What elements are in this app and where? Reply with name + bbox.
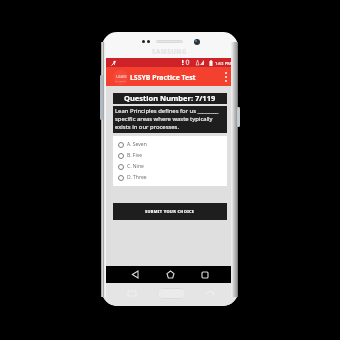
button[interactable]: A. Seven [113,139,227,150]
button[interactable]: B. Five [113,150,227,161]
staticText: Question Number: 7/119 [124,93,216,103]
staticText: LSSYB Practice Test [130,73,196,82]
staticText: C. Nine [127,163,144,170]
staticText: SUBMIT YOUR CHOICE [145,209,195,214]
staticText: A. Seven [127,141,147,148]
button[interactable]: D. Three [113,172,227,183]
staticText: SAMSUNG [152,47,187,55]
button[interactable]: Volume [100,75,103,120]
button[interactable]: Back [129,266,141,283]
staticText: B. Five [127,152,143,159]
staticText: Lean Principles defines for us ________ … [115,107,219,131]
staticText: SIX SIGMA [115,79,127,82]
button[interactable]: Home [164,266,176,283]
staticText: 1:53 PM [215,60,232,66]
button[interactable]: More options [220,67,231,86]
button[interactable]: SUBMIT YOUR CHOICE [113,203,227,220]
button[interactable]: C. Nine [113,161,227,172]
button[interactable]: Recent apps [199,266,211,283]
button[interactable]: Home [157,288,186,299]
button[interactable]: Power [237,107,240,127]
staticText: D. Three [127,174,147,181]
staticText: LEAN [116,74,127,79]
